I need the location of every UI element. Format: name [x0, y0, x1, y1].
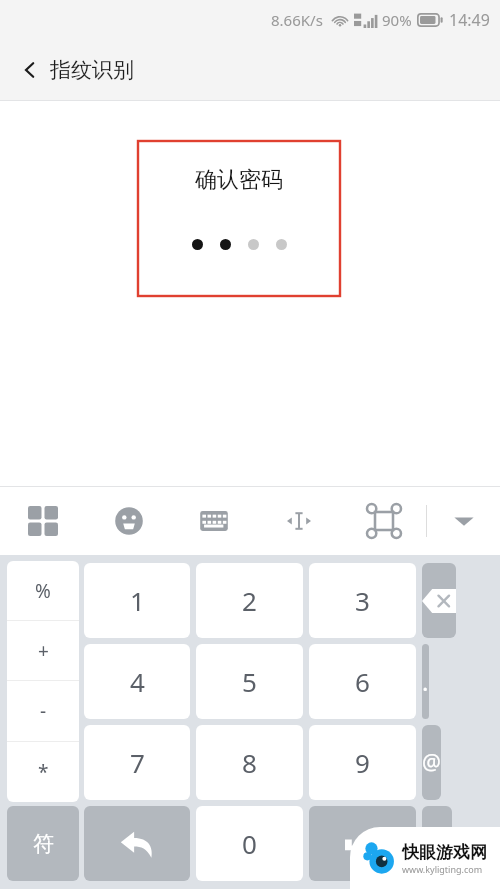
button[interactable]: 7: [84, 725, 190, 800]
staticText: 9: [355, 745, 370, 780]
staticText: %: [35, 578, 51, 604]
staticText: 0: [242, 826, 257, 861]
button[interactable]: 2: [196, 563, 303, 638]
staticText: 2: [242, 583, 257, 618]
button[interactable]: .: [422, 644, 429, 719]
staticText: .: [422, 665, 429, 698]
button[interactable]: Settings: [341, 487, 426, 555]
button[interactable]: Space: [309, 806, 416, 881]
button[interactable]: 5: [196, 644, 303, 719]
button[interactable]: Emoji: [86, 487, 171, 555]
staticText: 14:49: [449, 9, 490, 31]
staticText: 8: [242, 745, 257, 780]
button[interactable]: %: [7, 561, 79, 620]
staticText: 快眼游戏网: [402, 842, 487, 863]
button[interactable]: 1: [84, 563, 190, 638]
staticText: @: [422, 748, 441, 777]
button[interactable]: Keyboard: [171, 487, 256, 555]
button[interactable]: +: [7, 621, 79, 680]
staticText: *: [38, 759, 49, 785]
button[interactable]: @: [422, 725, 441, 800]
staticText: 8.66K/s: [271, 10, 323, 30]
staticText: 指纹识别: [50, 57, 134, 83]
staticText: 1: [130, 583, 145, 618]
staticText: 4: [130, 664, 145, 699]
button[interactable]: *: [7, 742, 79, 802]
button[interactable]: 0: [196, 806, 303, 881]
button[interactable]: 6: [309, 644, 416, 719]
staticText: +: [38, 638, 49, 664]
staticText: 确认密码: [195, 166, 283, 194]
staticText: 7: [130, 745, 145, 780]
staticText: 3: [355, 583, 370, 618]
button[interactable]: -: [7, 681, 79, 741]
button[interactable]: Hide keyboard: [427, 487, 500, 555]
staticText: 90%: [382, 10, 412, 30]
staticText: 符: [33, 831, 54, 857]
button[interactable]: 4: [84, 644, 190, 719]
button[interactable]: Enter: [422, 806, 452, 881]
button[interactable]: Move cursor: [256, 487, 341, 555]
button[interactable]: 3: [309, 563, 416, 638]
staticText: www.kyligting.com: [402, 863, 483, 875]
staticText: 5: [242, 664, 257, 699]
button[interactable]: Undo: [84, 806, 190, 881]
staticText: -: [40, 698, 47, 724]
button[interactable]: Back: [10, 50, 50, 90]
button[interactable]: 符: [7, 806, 79, 881]
button[interactable]: 8: [196, 725, 303, 800]
staticText: 6: [355, 664, 370, 699]
button[interactable]: 9: [309, 725, 416, 800]
button[interactable]: Keyboard layouts: [0, 487, 86, 555]
button[interactable]: Delete: [422, 563, 456, 638]
